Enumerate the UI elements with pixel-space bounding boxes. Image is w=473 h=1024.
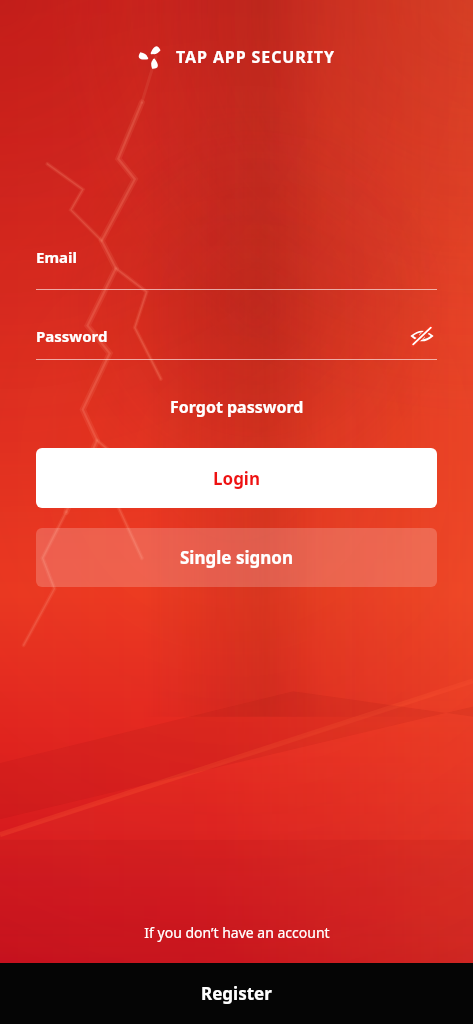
- staticText: Forgot password: [170, 396, 304, 418]
- button[interactable]: Forgot password: [158, 390, 316, 424]
- button[interactable]: Show password: [407, 321, 437, 351]
- staticText: If you don’t have an account: [144, 923, 330, 942]
- button[interactable]: Login: [36, 448, 437, 508]
- staticText: Login: [213, 467, 261, 490]
- staticText: Register: [201, 982, 272, 1005]
- staticText: Single signon: [180, 546, 293, 569]
- staticText: TAP APP SECURITY: [176, 46, 335, 68]
- button[interactable]: Register: [0, 963, 473, 1024]
- button[interactable]: Single signon: [36, 528, 437, 587]
- staticText: Email: [36, 247, 77, 267]
- staticText: Password: [36, 326, 108, 346]
